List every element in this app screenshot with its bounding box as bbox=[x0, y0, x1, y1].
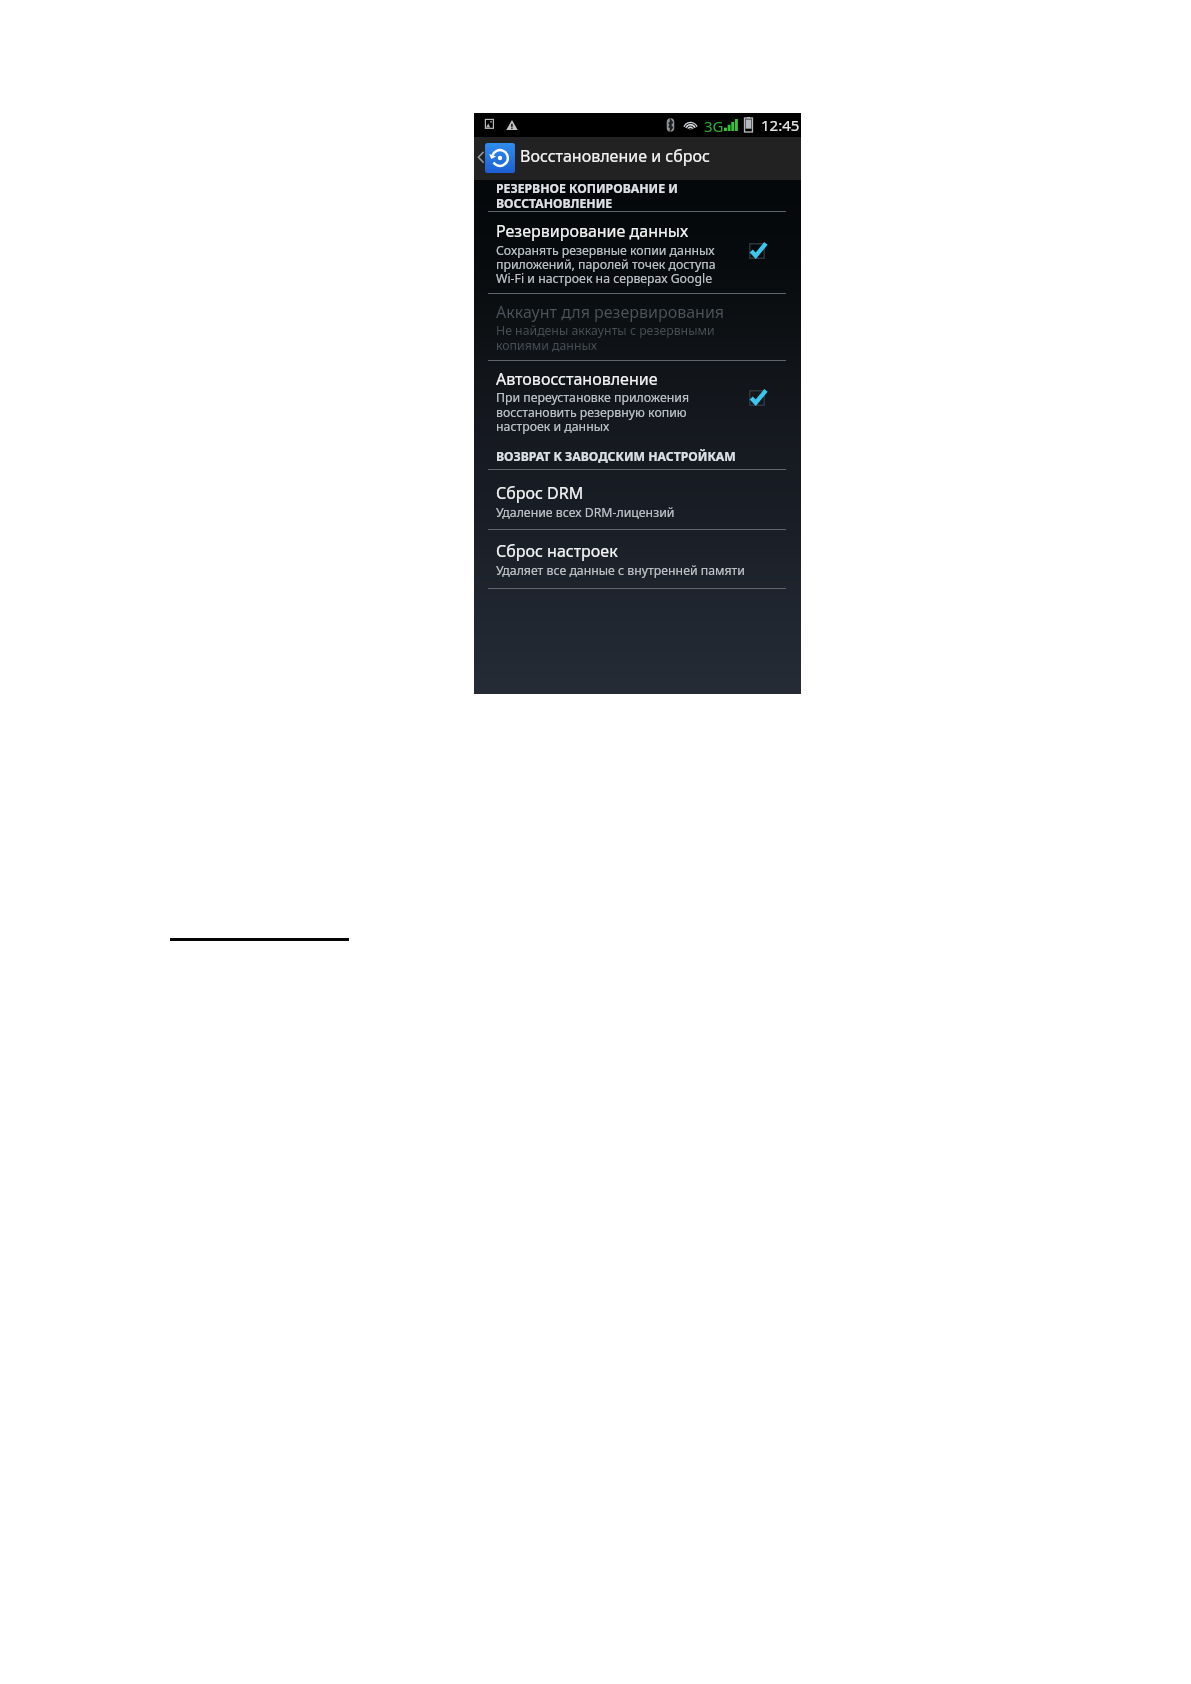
staticText: Сохранять резервные копии данных bbox=[496, 242, 715, 259]
staticText: ВОЗВРАТ К ЗАВОДСКИМ НАСТРОЙКАМ bbox=[496, 448, 736, 465]
staticText: Удаление всех DRM-лицензий bbox=[496, 504, 675, 521]
button[interactable] bbox=[474, 295, 801, 360]
staticText: копиями данных bbox=[496, 337, 598, 354]
button[interactable] bbox=[474, 212, 801, 293]
button[interactable]: Toggle setting bbox=[740, 236, 785, 266]
button[interactable]: Backup and reset bbox=[485, 143, 515, 173]
staticText: Аккаунт для резервирования bbox=[496, 301, 725, 323]
button[interactable] bbox=[474, 137, 801, 180]
staticText: Автовосстановление bbox=[496, 368, 658, 390]
staticText: Сброс DRM bbox=[496, 482, 584, 504]
button[interactable]: Toggle setting bbox=[740, 383, 785, 413]
button[interactable] bbox=[474, 470, 801, 528]
button[interactable] bbox=[474, 361, 801, 443]
staticText: Резервирование данных bbox=[496, 220, 689, 242]
staticText: Удаляет все данные с внутренней памяти bbox=[496, 562, 745, 579]
staticText: Сброс настроек bbox=[496, 540, 618, 562]
staticText: восстановить резервную копию bbox=[496, 404, 687, 421]
staticText: ВОССТАНОВЛЕНИЕ bbox=[496, 195, 613, 212]
staticText: приложений, паролей точек доступа bbox=[496, 256, 716, 273]
staticText: РЕЗЕРВНОЕ КОПИРОВАНИЕ И bbox=[496, 180, 678, 197]
button[interactable]: Navigate up bbox=[474, 143, 485, 173]
button[interactable] bbox=[474, 530, 801, 588]
staticText: Восстановление и сброс bbox=[520, 145, 710, 167]
staticText: 12:45 bbox=[761, 115, 800, 135]
staticText: Не найдены аккаунты с резервными bbox=[496, 322, 715, 339]
staticText: При переустановке приложения bbox=[496, 389, 689, 406]
staticText: 3G bbox=[704, 116, 724, 136]
staticText: Wi-Fi и настроек на серверах Google bbox=[496, 270, 713, 287]
staticText: настроек и данных bbox=[496, 418, 610, 435]
